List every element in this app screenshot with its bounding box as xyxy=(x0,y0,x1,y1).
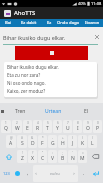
button[interactable]: Bai xyxy=(0,19,16,27)
button[interactable]: - xyxy=(48,135,57,148)
staticText: L xyxy=(91,140,94,147)
button[interactable]: Ni oso ondo nago. xyxy=(7,79,97,87)
button[interactable]: Ez dakit xyxy=(16,19,42,27)
staticText: Itxaron xyxy=(85,20,100,26)
button[interactable]: Itxaron xyxy=(81,19,103,27)
button[interactable]: & xyxy=(28,135,37,148)
staticText: El xyxy=(84,108,89,115)
staticText: S xyxy=(21,140,24,147)
button[interactable]: 3 xyxy=(23,120,32,133)
staticText: 7 xyxy=(67,121,69,125)
staticText: W xyxy=(15,125,20,132)
staticText: Q xyxy=(4,125,8,132)
staticText: / xyxy=(92,136,94,140)
button[interactable]: # xyxy=(17,135,27,148)
staticText: . xyxy=(83,170,85,177)
button[interactable]: ! xyxy=(17,150,27,163)
staticText: eu/eu xyxy=(50,171,60,176)
button[interactable]: Tren xyxy=(4,103,37,119)
button[interactable]: ? xyxy=(28,150,37,163)
button[interactable]: Eta zu nor zara? xyxy=(7,71,97,79)
staticText: H xyxy=(61,140,65,147)
button[interactable]: ) xyxy=(78,135,87,148)
button[interactable]: Shift xyxy=(1,150,16,163)
staticText: 9 xyxy=(87,121,89,125)
button[interactable]: Emoji xyxy=(13,165,22,182)
button[interactable]: 5 xyxy=(43,120,52,133)
staticText: G xyxy=(51,140,55,147)
staticText: Bai xyxy=(5,20,12,26)
button[interactable]: 0 xyxy=(93,120,102,133)
button[interactable]: 7 xyxy=(63,120,72,133)
button[interactable]: App icon xyxy=(4,10,11,17)
button[interactable]: Backspace xyxy=(88,150,102,163)
button[interactable]: ; xyxy=(58,150,67,163)
button[interactable]: ( xyxy=(68,135,77,148)
button[interactable]: + xyxy=(58,135,67,148)
button[interactable]: 4 xyxy=(33,120,42,133)
button[interactable]: 1 xyxy=(1,120,11,133)
button[interactable]: = xyxy=(78,150,87,163)
staticText: U xyxy=(66,125,70,132)
staticText: Urtean xyxy=(45,108,62,115)
button[interactable]: 2 xyxy=(12,120,22,133)
staticText: 8 xyxy=(77,121,79,125)
button[interactable]: Stop xyxy=(15,46,88,60)
button[interactable]: El xyxy=(70,103,103,119)
button[interactable]: : xyxy=(48,150,57,163)
staticText: Bihar ikusiko dugu elkar. xyxy=(3,34,65,41)
staticText: " xyxy=(42,151,44,155)
button[interactable]: * xyxy=(38,135,47,148)
staticText: P xyxy=(96,125,100,132)
button[interactable]: / xyxy=(88,135,97,148)
staticText: 4 xyxy=(37,121,39,125)
staticText: * xyxy=(42,136,44,140)
staticText: & xyxy=(31,136,34,140)
button[interactable]: @ xyxy=(6,135,16,148)
staticText: C xyxy=(41,155,45,162)
staticText: R xyxy=(36,125,40,132)
button[interactable]: ' xyxy=(68,150,77,163)
staticText: ' xyxy=(72,151,73,155)
button[interactable]: Bihar ikusiko dugu elkar. xyxy=(7,63,97,71)
button[interactable]: Urtean xyxy=(37,103,70,119)
button[interactable]: Ez xyxy=(42,19,56,27)
staticText: 6 xyxy=(57,121,59,125)
staticText: Ez dakit xyxy=(21,20,37,26)
staticText: 3 xyxy=(27,121,29,125)
staticText: A xyxy=(9,140,13,147)
button[interactable]: Kaixo, zer moduz? xyxy=(7,87,97,95)
staticText: Bihar ikusiko dugu elkar. xyxy=(7,64,59,70)
button[interactable]: Clear text xyxy=(93,33,101,41)
staticText: ? xyxy=(32,151,34,155)
button[interactable]: , xyxy=(23,165,32,182)
staticText: I xyxy=(77,125,79,132)
staticText: < xyxy=(35,171,38,176)
staticText: Ez xyxy=(47,20,52,26)
button[interactable]: 9 xyxy=(83,120,92,133)
staticText: # xyxy=(21,136,23,140)
button[interactable]: Ondo dago xyxy=(56,19,81,27)
button[interactable]: 8 xyxy=(73,120,82,133)
button[interactable]: Voice xyxy=(0,103,4,119)
staticText: 2 xyxy=(16,121,18,125)
staticText: Y xyxy=(56,125,59,132)
button[interactable]: 123 xyxy=(1,165,12,182)
button[interactable]: 6 xyxy=(53,120,62,133)
staticText: O xyxy=(86,125,90,132)
button[interactable]: Enter xyxy=(89,165,102,182)
staticText: Eta zu nor zara? xyxy=(7,72,41,78)
staticText: Ondo dago xyxy=(57,20,80,26)
staticText: X xyxy=(31,155,34,162)
staticText: 123 xyxy=(3,171,10,176)
staticText: > xyxy=(73,171,76,176)
button[interactable]: Space xyxy=(33,165,78,182)
staticText: J xyxy=(72,140,74,147)
staticText: T xyxy=(46,125,49,132)
staticText: Kaixo, zer moduz? xyxy=(7,88,46,94)
staticText: K xyxy=(81,140,85,147)
button[interactable]: . xyxy=(79,165,88,182)
staticText: 0 xyxy=(97,121,99,125)
staticText: 40% xyxy=(78,1,86,6)
button[interactable]: " xyxy=(38,150,47,163)
